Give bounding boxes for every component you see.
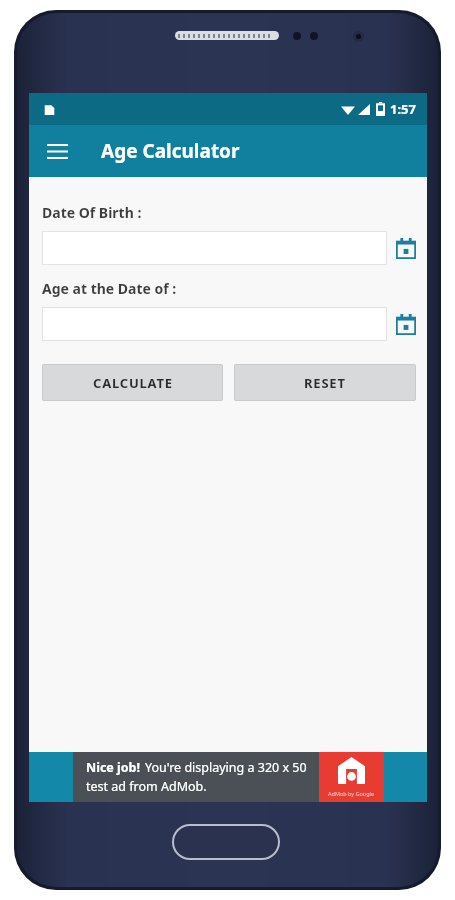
staticText: AdMob by Google — [328, 790, 375, 797]
staticText: CALCULATE — [93, 374, 173, 392]
other: Home — [172, 824, 280, 860]
button[interactable]: Pick date — [396, 234, 416, 262]
button[interactable]: RESET — [234, 364, 416, 401]
staticText: Age Calculator — [101, 138, 240, 164]
button[interactable]: Open navigation menu — [35, 129, 79, 173]
staticText: test ad from AdMob. — [86, 778, 207, 795]
button[interactable] — [42, 231, 387, 265]
button[interactable]: Nice job! — [73, 752, 384, 802]
staticText: Nice job! — [86, 759, 141, 776]
staticText: 1:57 — [390, 100, 416, 118]
button[interactable]: CALCULATE — [42, 364, 223, 401]
staticText: Age at the Date of : — [42, 279, 177, 298]
staticText: You're displaying a 320 x 50 — [145, 759, 307, 776]
button[interactable] — [42, 307, 387, 341]
staticText: RESET — [304, 374, 346, 392]
staticText: Date Of Birth : — [42, 203, 142, 222]
button[interactable]: Pick date — [396, 310, 416, 338]
